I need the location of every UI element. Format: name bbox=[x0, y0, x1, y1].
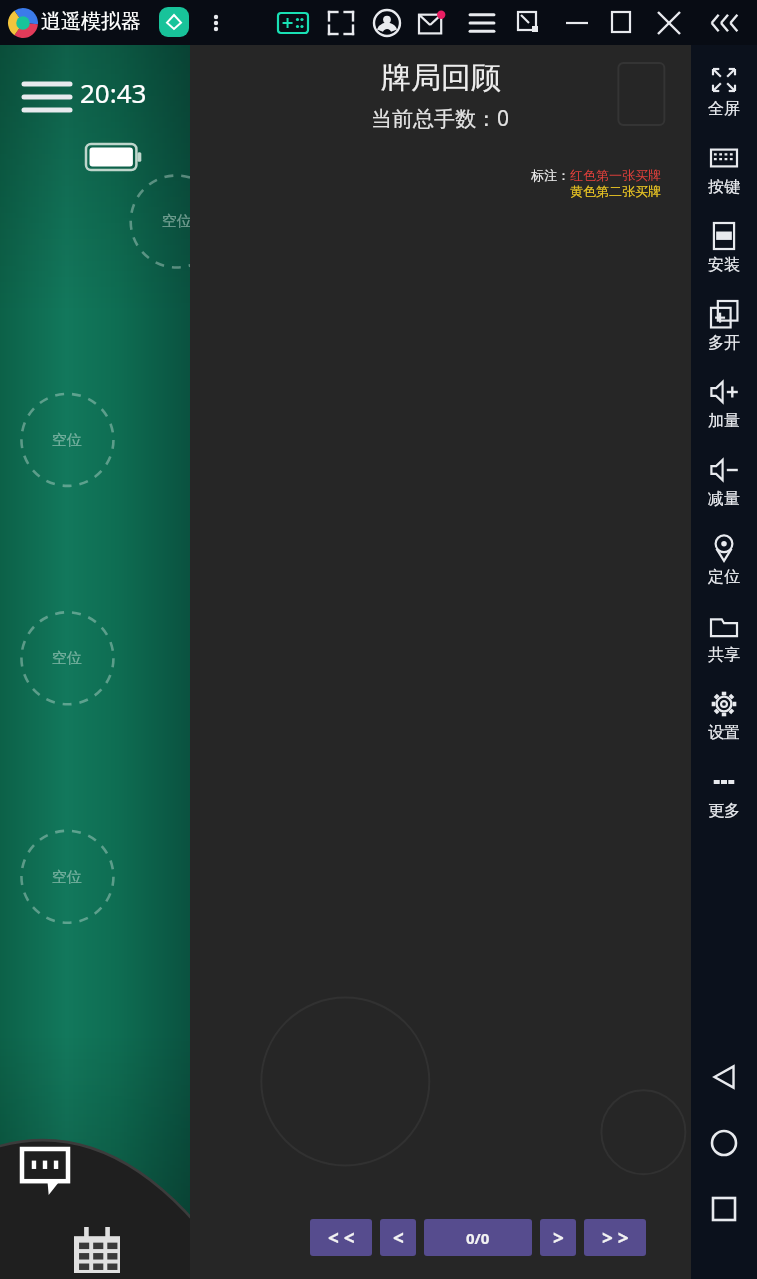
staticText: 牌局回顾 bbox=[381, 59, 501, 97]
staticText: 设置 bbox=[708, 723, 740, 743]
button[interactable]: 设置 bbox=[691, 677, 757, 755]
button[interactable]: Chat bbox=[22, 1149, 68, 1195]
button[interactable]: 全屏 bbox=[691, 53, 757, 131]
button[interactable]: 减量 bbox=[691, 443, 757, 521]
button[interactable]: < < bbox=[310, 1219, 372, 1256]
button[interactable]: App shortcut bbox=[159, 7, 189, 37]
staticText: 按键 bbox=[708, 177, 740, 197]
button[interactable]: Game menu bbox=[22, 78, 72, 116]
button[interactable]: Maximize bbox=[609, 10, 635, 36]
button[interactable]: Messages bbox=[419, 10, 449, 36]
button[interactable]: Recent apps bbox=[704, 1189, 744, 1229]
staticText: 安装 bbox=[708, 255, 740, 275]
staticText: < bbox=[393, 1225, 404, 1251]
button[interactable]: 更多 bbox=[691, 755, 757, 833]
button[interactable]: Collapse toolbar bbox=[703, 11, 739, 35]
staticText: > > bbox=[602, 1225, 629, 1251]
button[interactable]: Back bbox=[704, 1057, 744, 1097]
staticText: > bbox=[553, 1225, 564, 1251]
button[interactable]: 定位 bbox=[691, 521, 757, 599]
button[interactable]: Calendar bbox=[74, 1227, 120, 1273]
staticText: 20:43 bbox=[80, 75, 147, 110]
staticText: 减量 bbox=[708, 489, 740, 509]
button[interactable]: Screenshot bbox=[327, 10, 355, 36]
button[interactable]: 0/0 bbox=[424, 1219, 532, 1256]
button[interactable]: Gamepad bbox=[277, 10, 309, 36]
button[interactable]: > bbox=[540, 1219, 576, 1256]
staticText: 0/0 bbox=[466, 1228, 490, 1248]
button[interactable]: > > bbox=[584, 1219, 646, 1256]
button[interactable]: 安装 bbox=[691, 209, 757, 287]
button[interactable]: Share screen bbox=[516, 10, 542, 36]
staticText: 红色第一张买牌 bbox=[570, 167, 661, 183]
staticText: 全屏 bbox=[708, 99, 740, 119]
button[interactable]: 多开 bbox=[691, 287, 757, 365]
button[interactable]: Home bbox=[704, 1123, 744, 1163]
button[interactable]: 加量 bbox=[691, 365, 757, 443]
button[interactable]: Minimize bbox=[564, 10, 590, 36]
staticText: 空位 bbox=[52, 649, 82, 668]
button[interactable]: Empty seat bbox=[154, 210, 200, 232]
staticText: 定位 bbox=[708, 567, 740, 587]
staticText: 加量 bbox=[708, 411, 740, 431]
button[interactable]: Empty seat bbox=[44, 647, 90, 669]
button[interactable]: 共享 bbox=[691, 599, 757, 677]
staticText: 空位 bbox=[52, 431, 82, 450]
button[interactable]: Empty seat bbox=[44, 429, 90, 451]
staticText: 更多 bbox=[708, 801, 740, 821]
button[interactable]: Account bbox=[373, 9, 401, 37]
button[interactable]: Menu bbox=[469, 11, 495, 35]
staticText: 空位 bbox=[162, 212, 192, 231]
staticText: 当前总手数：0 bbox=[371, 104, 510, 133]
button[interactable]: Close bbox=[656, 10, 682, 36]
staticText: 黄色第二张买牌 bbox=[570, 183, 661, 199]
staticText: 多开 bbox=[708, 333, 740, 353]
staticText: 共享 bbox=[708, 645, 740, 665]
staticText: 标注： bbox=[531, 167, 570, 183]
staticText: 逍遥模拟器 bbox=[41, 9, 141, 34]
button[interactable]: 按键 bbox=[691, 131, 757, 209]
button[interactable]: < bbox=[380, 1219, 416, 1256]
button[interactable]: Empty seat bbox=[44, 866, 90, 888]
staticText: 空位 bbox=[52, 868, 82, 887]
staticText: < < bbox=[328, 1225, 355, 1251]
button[interactable]: More options bbox=[206, 8, 226, 38]
